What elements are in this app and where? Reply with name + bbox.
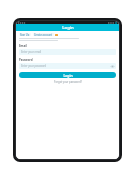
staticText: Enter your email [21,50,114,54]
staticText: Password [19,58,33,62]
staticText: Enter your password [21,64,111,68]
button[interactable]: Enter your email [19,49,116,55]
button[interactable]: Show password [111,65,114,68]
button[interactable]: Sign Up [19,33,31,36]
staticText: Login [62,25,74,31]
staticText: Create account [34,33,53,36]
button[interactable]: Forgot your password? [19,80,116,84]
button[interactable]: Login [19,72,116,78]
staticText: Forgot your password? [54,80,82,84]
button[interactable]: Create account [33,33,54,36]
button[interactable]: Notice [55,34,58,36]
button[interactable]: Enter your password [19,63,116,69]
staticText: Login [63,73,73,78]
staticText: Sign Up [20,33,30,36]
staticText: Email [19,44,27,48]
